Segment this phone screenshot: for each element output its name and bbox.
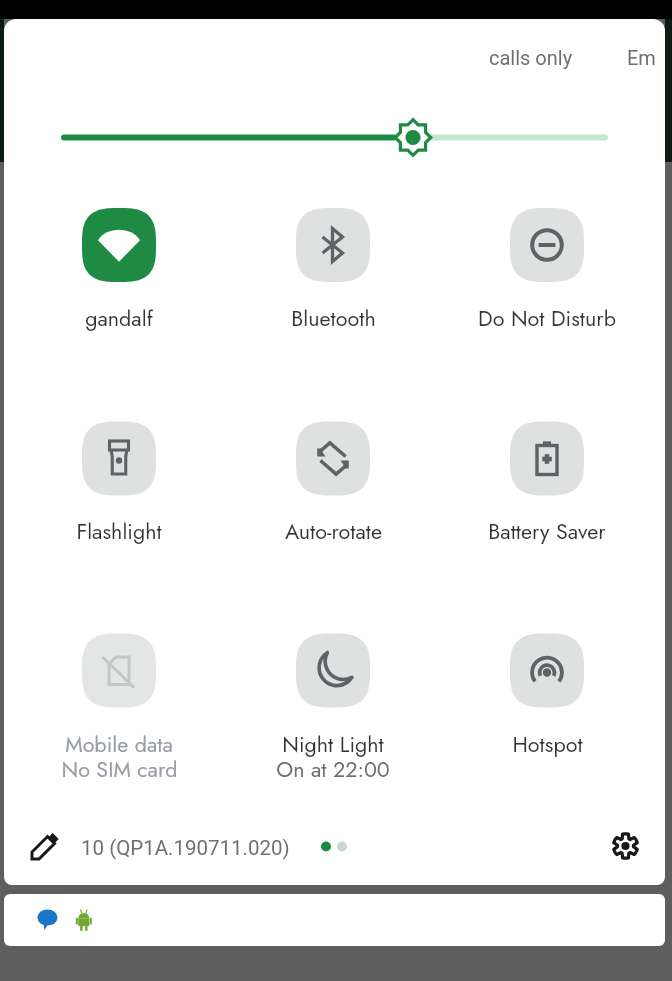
- button[interactable]: Open settings: [604, 824, 650, 870]
- button[interactable]: Hotspot: [510, 634, 584, 759]
- button[interactable]: Edit tiles: [26, 824, 69, 867]
- staticText: 10 (QP1A.190711.020): [81, 836, 290, 860]
- button[interactable]: Auto-rotate: [296, 422, 370, 546]
- staticText: gandalf: [85, 303, 153, 333]
- staticText: Auto-rotate: [285, 516, 382, 546]
- staticText: Do Not Disturb: [478, 303, 616, 333]
- staticText: No SIM card: [61, 754, 178, 784]
- staticText: Hotspot: [512, 729, 583, 759]
- staticText: On at 22:00: [276, 754, 390, 784]
- button[interactable]: Mobile data: [82, 634, 156, 759]
- staticText: Night Light: [282, 729, 384, 759]
- staticText: Flashlight: [76, 516, 162, 546]
- staticText: Mobile data: [65, 729, 173, 759]
- staticText: Bluetooth: [291, 303, 376, 333]
- button[interactable]: Battery Saver: [510, 422, 584, 546]
- staticText: Battery Saver: [488, 516, 606, 546]
- button[interactable]: Flashlight: [82, 422, 156, 546]
- button[interactable]: Bluetooth: [296, 208, 370, 333]
- staticText: calls only: [489, 46, 573, 69]
- button[interactable]: gandalf: [82, 208, 156, 333]
- staticText: Em: [627, 46, 656, 69]
- button[interactable]: Do Not Disturb: [510, 208, 584, 333]
- button[interactable]: Night Light: [296, 634, 370, 759]
